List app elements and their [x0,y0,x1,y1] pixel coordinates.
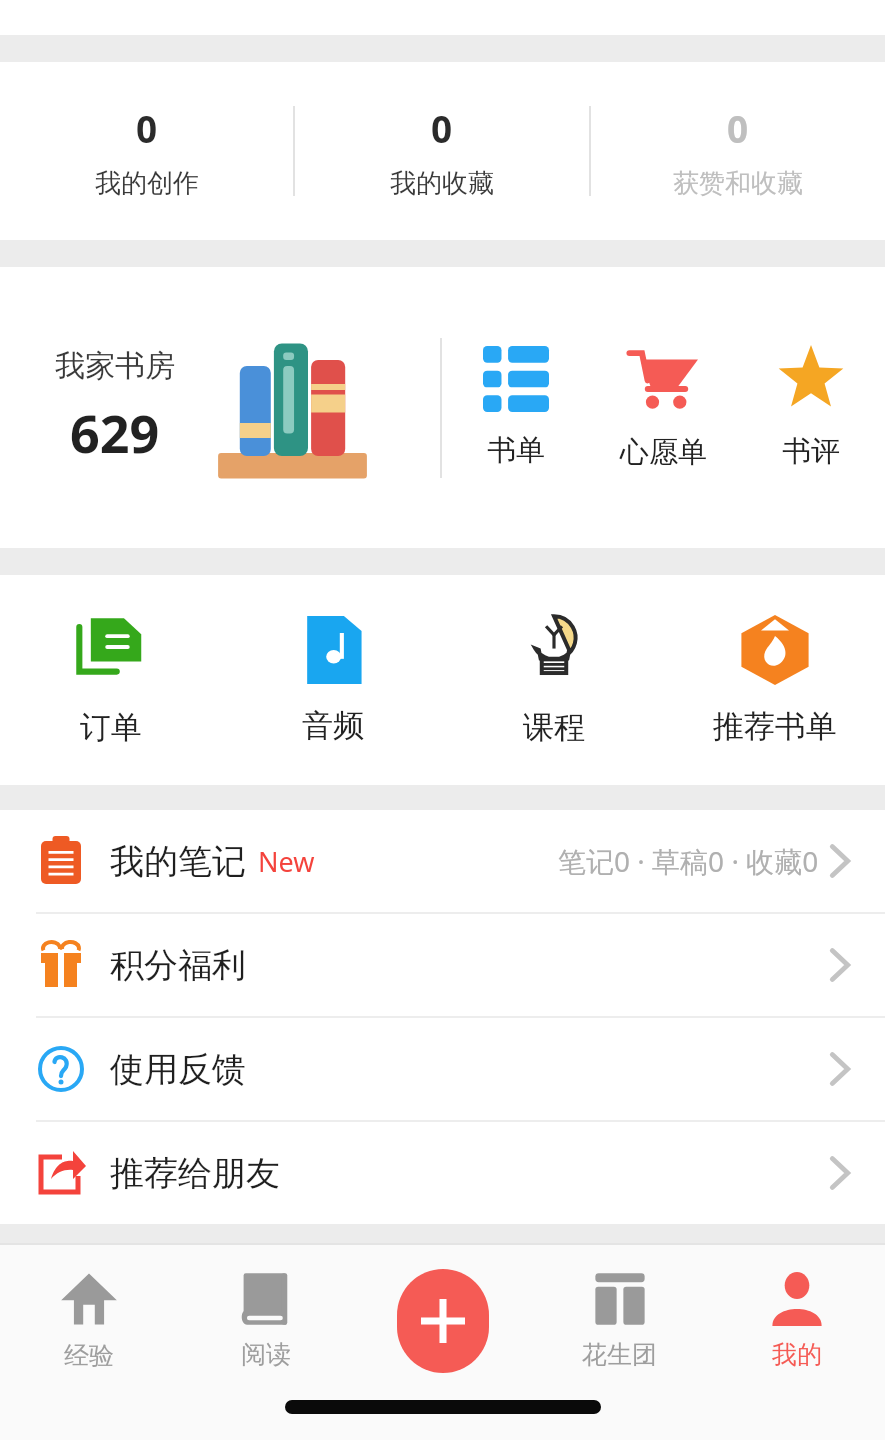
staticText: 我的创作 [95,167,199,200]
button[interactable]: 推荐书单 [664,575,885,785]
button[interactable]: 经验 [0,1243,177,1398]
button[interactable]: 课程 [443,575,664,785]
staticText: New [258,843,315,880]
staticText: 积分福利 [110,944,246,987]
staticText: 课程 [523,708,585,747]
staticText: 书评 [782,433,840,470]
staticText: 推荐给朋友 [110,1152,280,1195]
button[interactable]: 添加 [397,1269,489,1373]
staticText: 阅读 [241,1339,291,1370]
staticText: 花生团 [582,1339,657,1370]
button[interactable]: 花生团 [531,1243,708,1398]
button[interactable]: 书单 [442,267,589,548]
button[interactable]: 0 [591,62,885,240]
button[interactable]: 使用反馈 [0,1018,885,1120]
button[interactable]: 我的 [708,1243,885,1398]
staticText: 我家书房 [55,347,175,385]
staticText: 0 [136,103,158,153]
button[interactable]: 我家书房 [0,267,440,548]
staticText: 书单 [487,432,545,469]
staticText: 使用反馈 [110,1048,246,1091]
staticText: 笔记0 · 草稿0 · 收藏0 [558,842,819,880]
staticText: 音频 [302,706,364,745]
staticText: 我的 [772,1339,822,1370]
staticText: 我的收藏 [390,167,494,200]
button[interactable]: 0 [0,62,293,240]
button[interactable]: 阅读 [177,1243,354,1398]
button[interactable]: 书评 [737,267,885,548]
staticText: 订单 [80,708,142,747]
button[interactable]: 我的笔记 [0,810,885,912]
staticText: 心愿单 [620,434,707,471]
staticText: 0 [431,103,453,153]
button[interactable]: 积分福利 [0,914,885,1016]
staticText: 0 [727,103,749,153]
button[interactable]: 推荐给朋友 [0,1122,885,1224]
staticText: 我的笔记 [110,840,246,883]
staticText: 推荐书单 [713,707,837,746]
button[interactable]: 订单 [0,575,222,785]
button[interactable]: 心愿单 [589,267,737,548]
button[interactable]: 音频 [222,575,443,785]
staticText: 获赞和收藏 [673,167,803,200]
staticText: 经验 [64,1340,114,1371]
staticText: 629 [70,397,160,468]
button[interactable]: 0 [295,62,589,240]
